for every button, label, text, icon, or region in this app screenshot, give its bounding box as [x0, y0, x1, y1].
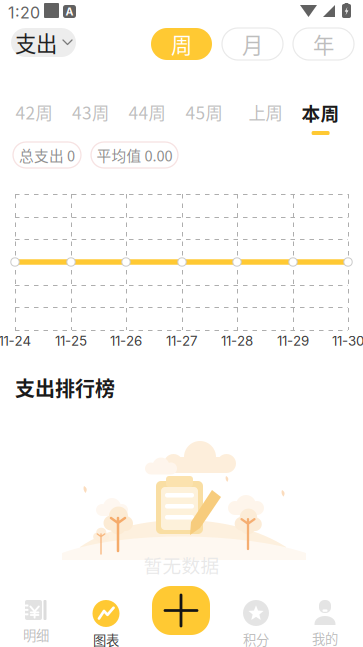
button[interactable]: 月 [222, 28, 283, 60]
staticText: 上周 [248, 99, 282, 125]
button[interactable]: 支出 [11, 28, 76, 57]
staticText: 暂无数据 [143, 551, 219, 578]
button[interactable]: 积分 [225, 600, 287, 647]
staticText: 45周 [185, 99, 222, 125]
staticText: 支出排行榜 [15, 373, 115, 402]
button[interactable]: 我的 [294, 600, 356, 647]
staticText: 积分 [243, 629, 269, 647]
staticText: 明细 [23, 625, 49, 644]
staticText: 支出 [15, 27, 57, 58]
button[interactable]: 42周 [7, 95, 61, 129]
button[interactable]: 44周 [120, 95, 174, 129]
staticText: 11-25 [55, 333, 87, 349]
staticText: 11-24 [0, 333, 31, 349]
staticText: 我的 [312, 628, 338, 647]
button[interactable]: 43周 [63, 95, 117, 129]
staticText: 11-28 [221, 333, 253, 349]
button[interactable]: 上周 [238, 95, 292, 129]
staticText: 本周 [302, 99, 340, 126]
staticText: 11-27 [166, 333, 198, 349]
button[interactable]: 明细 [5, 600, 67, 647]
staticText: 11-30 [332, 333, 363, 349]
staticText: 43周 [72, 99, 109, 125]
button[interactable]: 本周 [293, 99, 349, 139]
button[interactable]: Add transaction [152, 586, 210, 635]
staticText: 周 [171, 29, 192, 59]
staticText: A [65, 5, 73, 18]
staticText: 平均值 0.00 [96, 144, 172, 166]
staticText: 44周 [128, 99, 165, 125]
staticText: 年 [313, 29, 334, 59]
staticText: 图表 [93, 630, 119, 647]
staticText: 1:20 [8, 3, 40, 22]
button[interactable]: 图表 [75, 600, 137, 647]
staticText: 42周 [15, 99, 52, 125]
staticText: 月 [242, 29, 263, 59]
staticText: 11-26 [110, 333, 142, 349]
staticText: 11-29 [277, 333, 309, 349]
button[interactable]: 年 [293, 28, 354, 60]
button[interactable]: 45周 [177, 95, 231, 129]
button[interactable]: 周 [151, 28, 212, 60]
staticText: 总支出 0 [19, 144, 75, 166]
